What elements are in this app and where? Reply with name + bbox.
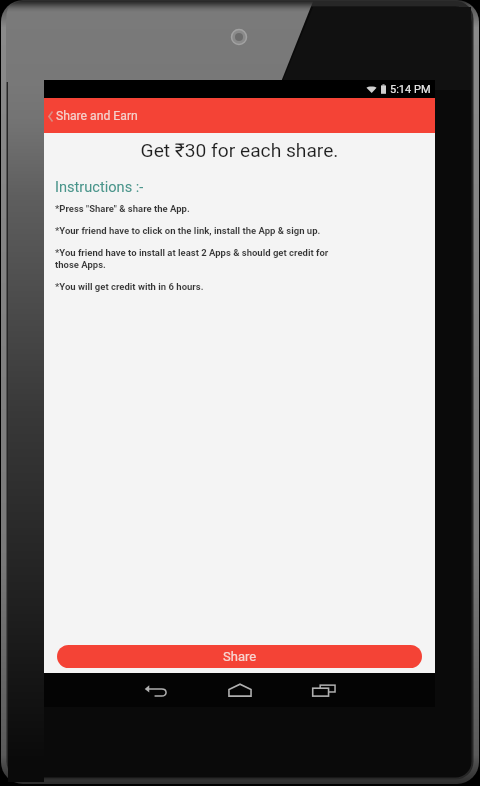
button[interactable]: Recent apps	[307, 675, 341, 705]
staticText: Share and Earn	[56, 109, 138, 123]
staticText: *You friend have to install at least 2 A…	[55, 247, 329, 270]
button[interactable]: Back	[45, 104, 56, 128]
button[interactable]: Back	[44, 98, 435, 133]
staticText: Share	[223, 649, 257, 664]
staticText: *Your friend have to click on the link, …	[55, 225, 321, 236]
button[interactable]: Share	[57, 645, 422, 668]
staticText: *You will get credit with in 6 hours.	[55, 281, 204, 292]
staticText: *Press "Share" & share the App.	[55, 203, 190, 214]
staticText: 5:14 PM	[390, 83, 431, 96]
button[interactable]: Home	[223, 675, 257, 705]
staticText: Get ₹30 for each share.	[44, 139, 435, 162]
staticText: Instructions :-	[55, 178, 144, 195]
button[interactable]: Back	[139, 675, 173, 705]
